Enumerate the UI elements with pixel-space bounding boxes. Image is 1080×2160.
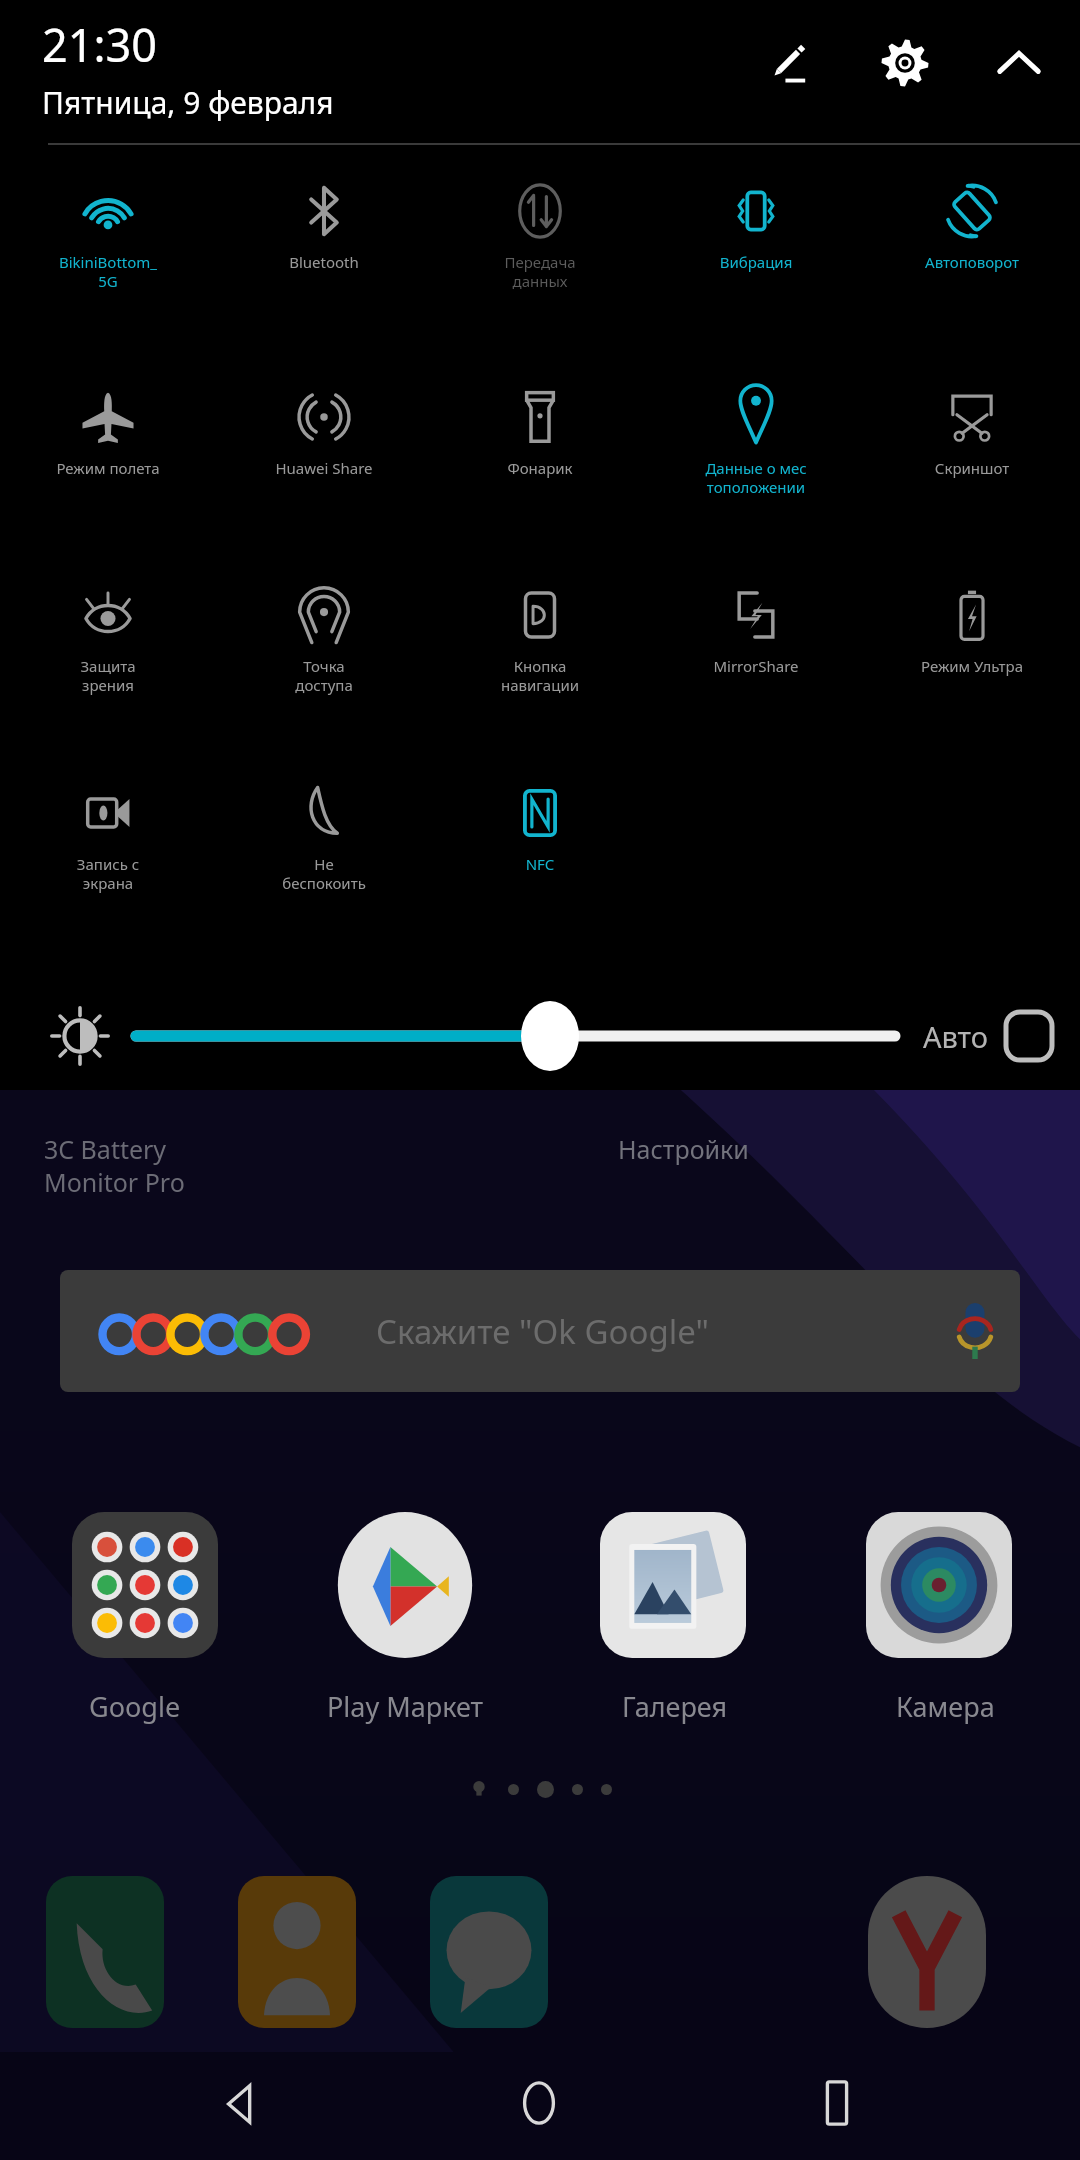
staticText: Авто	[923, 1017, 988, 1056]
button[interactable]	[332, 1512, 478, 1658]
staticText: Huawei Share	[216, 458, 432, 478]
button[interactable]: Contacts	[238, 1876, 356, 2028]
staticText: Не беспокоить	[216, 854, 432, 893]
staticText: 21:30	[42, 14, 158, 75]
staticText: Защита зрения	[0, 656, 216, 695]
button[interactable]: Brightness	[132, 1004, 899, 1068]
staticText: Bluetooth	[216, 252, 432, 272]
staticText: Google	[89, 1688, 181, 1725]
button[interactable]: MirrorShare	[648, 586, 864, 676]
button[interactable]	[866, 1512, 1012, 1658]
staticText: Режим полета	[0, 458, 216, 478]
staticText: Play Маркет	[327, 1688, 484, 1725]
button[interactable]: Collapse	[976, 20, 1062, 106]
staticText: Пятница, 9 февраля	[42, 82, 334, 123]
staticText: Автоповорот	[864, 252, 1080, 272]
staticText: Фонарик	[432, 458, 648, 478]
button[interactable]: Home	[484, 2048, 594, 2158]
button[interactable]: Точка доступа	[216, 586, 432, 695]
staticText: BikiniBottom_ 5G	[0, 252, 216, 291]
staticText: Точка доступа	[216, 656, 432, 695]
button[interactable]: Автоповорот	[864, 182, 1080, 272]
staticText: 3C Battery Monitor Pro	[44, 1132, 185, 1199]
button[interactable]: Bluetooth	[216, 182, 432, 272]
button[interactable]: Режим Ультра	[864, 586, 1080, 676]
button[interactable]: Запись с экрана	[0, 784, 216, 893]
button[interactable]: Скажите "Ok Google"	[60, 1270, 1020, 1392]
button[interactable]: Данные о мес тоположении	[648, 388, 864, 497]
button[interactable]: Yandex	[868, 1876, 986, 2028]
button[interactable]: Вибрация	[648, 182, 864, 272]
staticText: Режим Ультра	[864, 656, 1080, 676]
button[interactable]: Back	[187, 2048, 297, 2158]
button[interactable]: Скриншот	[864, 388, 1080, 478]
button[interactable]: NFC	[432, 784, 648, 874]
staticText: Камера	[896, 1688, 995, 1725]
staticText: Данные о мес тоположении	[648, 458, 864, 497]
button[interactable]	[72, 1512, 218, 1658]
button[interactable]: Передача данных	[432, 182, 648, 291]
staticText: Настройки	[618, 1132, 749, 1166]
staticText: Галерея	[622, 1688, 728, 1725]
button[interactable]: Авто	[923, 1012, 1052, 1060]
button[interactable]: Фонарик	[432, 388, 648, 478]
button[interactable]: Phone	[46, 1876, 164, 2028]
staticText: Вибрация	[648, 252, 864, 272]
button[interactable]: Recents	[782, 2048, 892, 2158]
staticText: Скриншот	[864, 458, 1080, 478]
staticText: Запись с экрана	[0, 854, 216, 893]
button[interactable]: Не беспокоить	[216, 784, 432, 893]
staticText: NFC	[432, 854, 648, 874]
staticText: Скажите "Ok Google"	[376, 1309, 709, 1354]
button[interactable]: Huawei Share	[216, 388, 432, 478]
button[interactable]	[600, 1512, 746, 1658]
button[interactable]: Кнопка навигации	[432, 586, 648, 695]
button[interactable]: Защита зрения	[0, 586, 216, 695]
button[interactable]: Messages	[430, 1876, 548, 2028]
button[interactable]: BikiniBottom_ 5G	[0, 182, 216, 291]
button[interactable]: Edit	[744, 20, 830, 106]
button[interactable]: Settings	[862, 20, 948, 106]
staticText: MirrorShare	[648, 656, 864, 676]
staticText: Передача данных	[432, 252, 648, 291]
staticText: Кнопка навигации	[432, 656, 648, 695]
button[interactable]: Режим полета	[0, 388, 216, 478]
